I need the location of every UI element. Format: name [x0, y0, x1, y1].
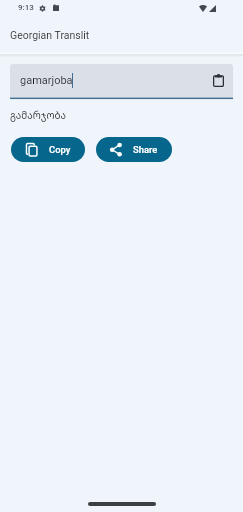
button[interactable]: Copy [11, 137, 85, 162]
staticText: Copy [49, 144, 71, 155]
button[interactable]: Share [96, 137, 172, 162]
staticText: gamarjoba [20, 74, 73, 87]
staticText: Share [133, 144, 158, 155]
staticText: 9:13 [18, 3, 34, 12]
button[interactable] [10, 64, 233, 97]
staticText: გამარჯობა [10, 108, 66, 122]
staticText: Georgian Translit [10, 29, 90, 41]
button[interactable]: Paste from clipboard [213, 74, 224, 87]
